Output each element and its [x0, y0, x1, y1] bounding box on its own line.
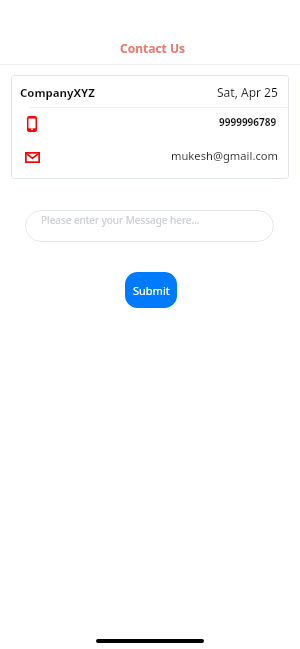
- staticText: Sat, Apr 25: [217, 84, 278, 100]
- staticText: 9999996789: [219, 115, 277, 129]
- staticText: Submit: [133, 283, 170, 298]
- button[interactable]: Submit: [125, 272, 177, 308]
- button[interactable]: Please enter your Message here...: [25, 210, 274, 242]
- staticText: CompanyXYZ: [20, 85, 95, 101]
- staticText: Contact Us: [120, 40, 186, 56]
- staticText: Please enter your Message here...: [41, 213, 200, 227]
- other: Email: [25, 152, 40, 163]
- other: Phone: [27, 116, 37, 132]
- staticText: mukesh@gmail.com: [171, 148, 278, 163]
